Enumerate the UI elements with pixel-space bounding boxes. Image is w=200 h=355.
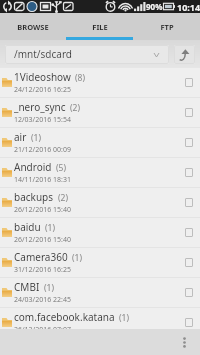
staticText: air bbox=[14, 130, 27, 144]
staticText: 90% bbox=[146, 1, 163, 12]
staticText: backups bbox=[14, 190, 54, 204]
button[interactable]: 1Videoshow bbox=[0, 68, 200, 97]
staticText: (2) bbox=[58, 192, 68, 204]
button[interactable]: /mnt/sdcard bbox=[5, 45, 169, 64]
staticText: 26/12/2016 15:40 bbox=[14, 235, 71, 245]
button[interactable]: FTP bbox=[133, 13, 200, 40]
button[interactable]: Up one level bbox=[174, 45, 195, 64]
button[interactable]: Select bbox=[185, 138, 193, 147]
staticText: com.facebook.katana bbox=[14, 310, 115, 324]
staticText: CMBI bbox=[14, 280, 40, 294]
staticText: FILE bbox=[92, 22, 108, 32]
button[interactable]: Select bbox=[185, 108, 193, 117]
staticText: (8) bbox=[75, 72, 85, 84]
staticText: 24/12/2016 16:25 bbox=[14, 85, 71, 95]
button[interactable]: FILE bbox=[66, 13, 133, 40]
button[interactable]: Android bbox=[0, 158, 200, 187]
button[interactable]: Select bbox=[185, 168, 193, 177]
staticText: 12/03/2016 15:54 bbox=[14, 115, 71, 125]
button[interactable]: Camera360 bbox=[0, 248, 200, 277]
button[interactable]: backups bbox=[0, 188, 200, 217]
staticText: _nero_sync bbox=[14, 100, 66, 114]
staticText: (1) bbox=[119, 312, 129, 324]
button[interactable]: baidu bbox=[0, 218, 200, 247]
button[interactable]: _nero_sync bbox=[0, 98, 200, 127]
button[interactable]: air bbox=[0, 128, 200, 157]
button[interactable]: Select bbox=[185, 288, 193, 297]
staticText: Android bbox=[14, 160, 52, 174]
button[interactable]: Select bbox=[185, 318, 193, 327]
button[interactable]: BROWSE bbox=[0, 13, 66, 40]
staticText: (1) bbox=[31, 132, 41, 144]
staticText: 14/11/2016 18:31 bbox=[14, 175, 71, 185]
staticText: (1) bbox=[72, 252, 82, 264]
staticText: 21/12/2016 00:09 bbox=[14, 145, 71, 155]
button[interactable]: com.facebook.katana bbox=[0, 308, 200, 337]
staticText: (5) bbox=[56, 162, 66, 174]
staticText: (2) bbox=[70, 102, 80, 114]
button[interactable]: More options bbox=[176, 329, 192, 355]
button[interactable]: CMBI bbox=[0, 278, 200, 307]
staticText: 1Videoshow bbox=[14, 70, 71, 84]
button[interactable]: Select bbox=[185, 198, 193, 207]
staticText: Camera360 bbox=[14, 250, 68, 264]
staticText: 24/03/2016 22:45 bbox=[14, 295, 71, 305]
button[interactable]: Select bbox=[185, 258, 193, 267]
staticText: (1) bbox=[45, 222, 55, 234]
button[interactable]: Select bbox=[185, 228, 193, 237]
staticText: BROWSE bbox=[17, 22, 49, 32]
staticText: /mnt/sdcard bbox=[14, 47, 73, 61]
staticText: baidu bbox=[14, 220, 41, 234]
staticText: 10:14 bbox=[177, 1, 200, 13]
staticText: 31/12/2016 16:25 bbox=[14, 265, 71, 275]
staticText: 26/12/2016 07:07 bbox=[14, 325, 71, 335]
button[interactable]: Select bbox=[185, 78, 193, 87]
staticText: 26/12/2016 15:40 bbox=[14, 205, 71, 215]
staticText: (1) bbox=[44, 282, 54, 294]
staticText: FTP bbox=[160, 22, 174, 32]
